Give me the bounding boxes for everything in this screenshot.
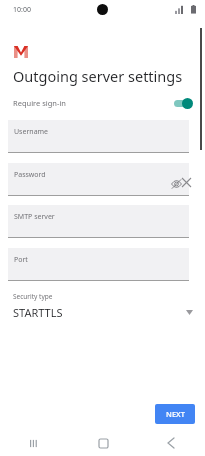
button[interactable]: NEXT [155,404,195,424]
button[interactable]: Username [8,120,189,153]
button[interactable]: Security type [0,292,205,326]
staticText: STARTTLS [13,305,63,320]
button[interactable]: Require sign-in [0,92,205,114]
staticText: Password [14,170,46,180]
button[interactable]: Password [8,163,189,196]
staticText: Outgoing server settings [13,66,183,86]
staticText: SMTP server [14,212,55,222]
staticText: NEXT [166,409,185,419]
staticText: Port [14,255,28,265]
button[interactable]: Home [69,430,137,456]
button[interactable]: SMTP server [8,205,189,238]
button[interactable]: Clear password [176,172,196,192]
staticText: Require sign-in [13,98,66,108]
staticText: Username [14,127,49,137]
staticText: Security type [13,292,53,301]
button[interactable]: Show password [168,176,184,192]
button[interactable]: Require sign-in toggle [173,97,193,109]
button[interactable]: Recents [0,430,69,456]
staticText: 10:00 [13,5,31,15]
button[interactable]: Back [137,430,205,456]
button[interactable]: Port [8,248,189,281]
